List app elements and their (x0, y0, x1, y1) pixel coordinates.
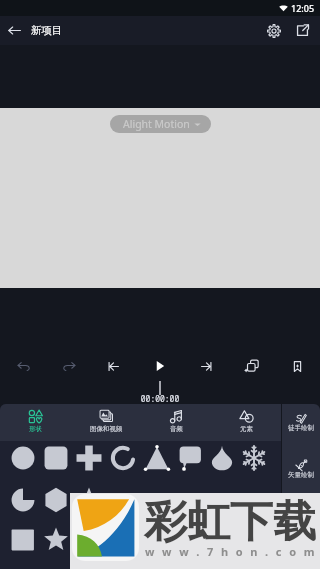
button[interactable]: Play (146, 352, 174, 380)
button[interactable]: Shape 4 (107, 442, 139, 474)
button[interactable]: Shape 18 (40, 524, 72, 556)
button[interactable]: Shape 5 (141, 442, 173, 474)
button[interactable]: 音频 (141, 404, 211, 441)
staticText: Alight Motion (123, 117, 190, 131)
staticText: 元素 (240, 425, 253, 433)
button[interactable]: Skip to end (192, 352, 220, 380)
button[interactable]: Shape 9 (7, 484, 39, 516)
button[interactable]: Shape 1 (7, 442, 39, 474)
staticText: 形状 (29, 425, 42, 433)
button[interactable]: Bookmark (283, 352, 311, 380)
button[interactable]: 徒手绘制 (282, 412, 320, 443)
button[interactable]: 形状 (0, 404, 71, 441)
button[interactable]: Shape 6 (174, 442, 206, 474)
button[interactable]: Shape 2 (40, 442, 72, 474)
button[interactable]: Shape 17 (7, 524, 39, 556)
button[interactable]: Shape 8 (238, 442, 270, 474)
button[interactable]: Shape 10 (40, 484, 72, 516)
staticText: 00:00:00 (0, 393, 320, 404)
button[interactable]: 图像和视频 (71, 404, 141, 441)
button[interactable]: Alight Motion (110, 115, 211, 133)
button[interactable]: Skip to start (99, 352, 127, 380)
staticText: 12:05 (291, 2, 315, 14)
staticText: 音频 (170, 425, 183, 433)
button[interactable]: Back (0, 16, 29, 45)
staticText: w w w . 7 h o n . c o m (145, 544, 317, 559)
staticText: 新项目 (31, 24, 63, 37)
button[interactable]: Undo (10, 352, 38, 380)
button[interactable]: Settings (259, 16, 288, 45)
button[interactable]: 矢量绘制 (282, 459, 320, 490)
button[interactable]: Shape 11 (73, 484, 105, 516)
button[interactable]: Export (288, 16, 317, 45)
button[interactable]: 元素 (211, 404, 281, 441)
button[interactable]: Redo (55, 352, 83, 380)
button[interactable]: Shape 7 (206, 442, 238, 474)
staticText: 图像和视频 (90, 425, 123, 433)
button[interactable]: Shape 3 (73, 442, 105, 474)
button[interactable]: Duplicate (238, 352, 266, 380)
staticText: 彩虹下载 (144, 495, 316, 549)
staticText: 徒手绘制 (288, 424, 314, 432)
staticText: 矢量绘制 (288, 471, 314, 479)
